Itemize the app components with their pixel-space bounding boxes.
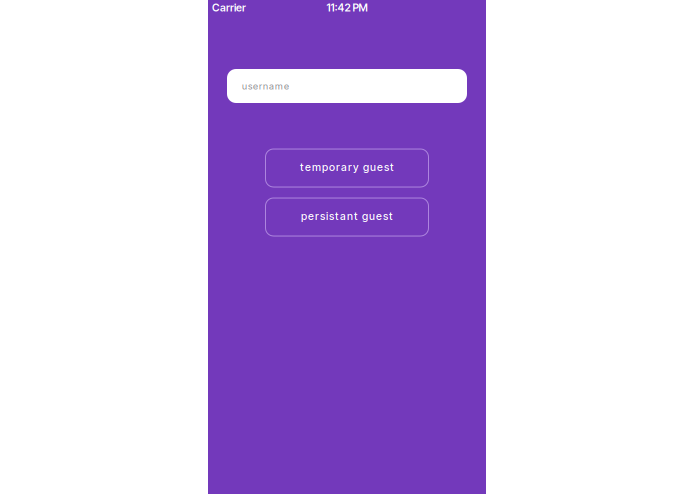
staticText: p e r s i s t a n t g u e s t [301, 209, 393, 222]
staticText: 11:42 PM [326, 1, 367, 14]
button[interactable]: persistant guest [265, 198, 428, 236]
staticText: Carrier [212, 1, 246, 14]
staticText: u s e r n a m e [242, 80, 289, 92]
staticText: t e m p o r a r y g u e s t [300, 160, 394, 173]
button[interactable]: temporary guest [265, 149, 428, 187]
